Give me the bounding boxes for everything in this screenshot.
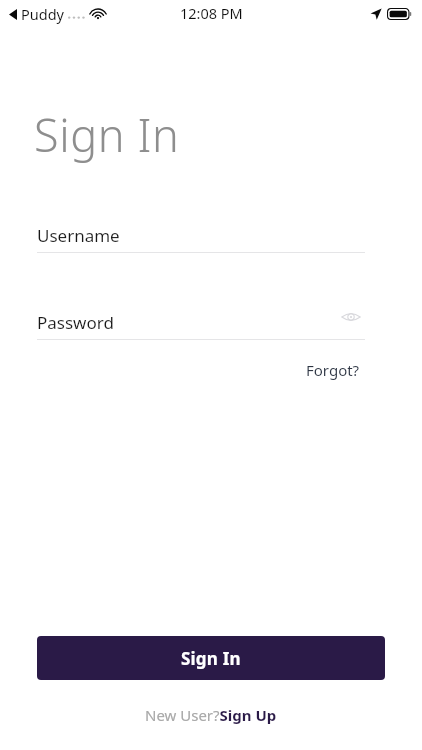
staticText: New User?Sign Up <box>145 705 277 725</box>
staticText: Puddy <box>21 4 64 24</box>
button[interactable] <box>29 216 373 260</box>
button[interactable] <box>29 303 329 347</box>
staticText: Password <box>37 311 114 334</box>
staticText: Forgot? <box>306 360 360 380</box>
button[interactable]: Forgot? <box>300 357 366 383</box>
staticText: Sign In <box>181 647 241 670</box>
staticText: 12:08 PM <box>180 3 243 23</box>
button[interactable]: New User?Sign Up <box>139 703 283 727</box>
staticText: Sign In <box>34 104 180 165</box>
button[interactable]: Sign In <box>37 636 385 680</box>
button[interactable]: Show password <box>336 302 366 332</box>
staticText: Username <box>37 224 120 247</box>
